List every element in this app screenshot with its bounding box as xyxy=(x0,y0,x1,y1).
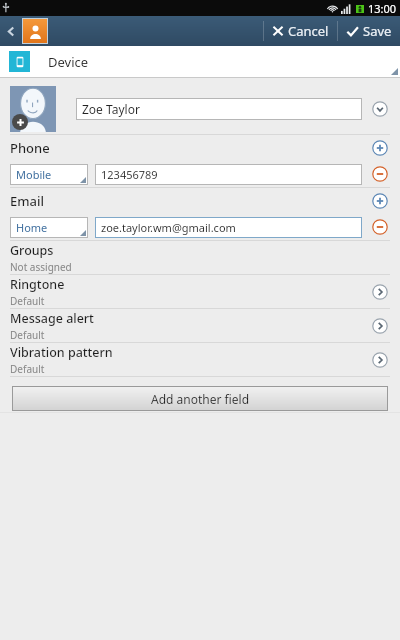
button[interactable]: Zoe Taylor xyxy=(76,98,362,120)
staticText: Phone xyxy=(10,139,50,157)
button[interactable]: Cancel xyxy=(264,18,337,44)
button[interactable]: Back xyxy=(0,16,22,46)
button[interactable]: Ringtone xyxy=(370,282,390,302)
staticText: Zoe Taylor xyxy=(82,101,140,117)
staticText: Mobile xyxy=(16,167,52,182)
staticText: Home xyxy=(16,220,48,235)
staticText: 123456789 xyxy=(101,167,158,182)
button[interactable]: Remove Home xyxy=(370,217,390,237)
button[interactable]: Message alert xyxy=(370,316,390,336)
staticText: Default xyxy=(10,362,45,376)
staticText: Save xyxy=(363,22,392,40)
staticText: Not assigned xyxy=(10,260,72,274)
button[interactable]: Vibration pattern xyxy=(370,350,390,370)
staticText: 13:00 xyxy=(368,1,397,16)
button[interactable]: Vibration pattern xyxy=(0,343,400,376)
staticText: Groups xyxy=(10,242,54,259)
staticText: Ringtone xyxy=(10,276,65,293)
button[interactable]: Remove Mobile xyxy=(370,164,390,184)
button[interactable]: Device xyxy=(0,46,400,77)
staticText: Vibration pattern xyxy=(10,344,113,361)
button[interactable]: Add photo xyxy=(10,86,56,132)
button[interactable]: Save xyxy=(338,18,394,44)
button[interactable]: Add Email xyxy=(370,191,390,211)
button[interactable]: 123456789 xyxy=(95,164,362,185)
button[interactable]: zoe.taylor.wm@gmail.com xyxy=(95,217,362,238)
staticText: Default xyxy=(10,328,45,342)
button[interactable]: Add Phone xyxy=(370,138,390,158)
staticText: Add another field xyxy=(151,391,250,407)
button[interactable]: Home xyxy=(10,217,88,238)
staticText: Message alert xyxy=(10,310,94,327)
button[interactable]: Mobile xyxy=(10,164,88,185)
staticText: Email xyxy=(10,192,45,210)
staticText: Device xyxy=(48,53,89,71)
button[interactable]: Expand name fields xyxy=(370,99,390,119)
button[interactable]: Message alert xyxy=(0,309,400,342)
button[interactable]: Add another field xyxy=(12,386,388,411)
staticText: Default xyxy=(10,294,45,308)
button[interactable]: Contact xyxy=(22,18,48,44)
button[interactable]: Groups xyxy=(0,241,400,274)
staticText: Cancel xyxy=(288,22,329,40)
button[interactable]: Ringtone xyxy=(0,275,400,308)
staticText: zoe.taylor.wm@gmail.com xyxy=(101,220,236,235)
